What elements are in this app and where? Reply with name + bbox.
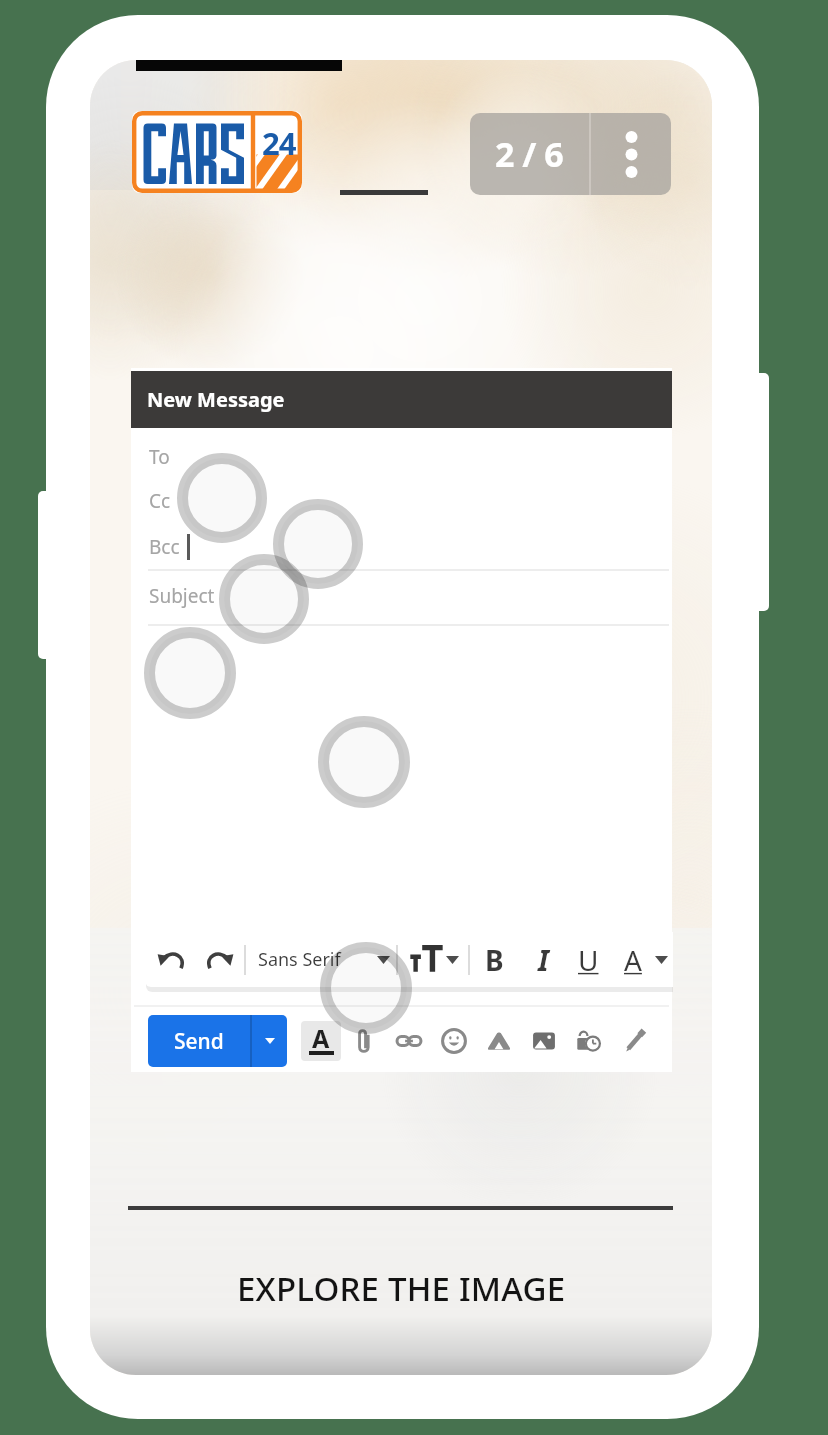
button[interactable]: Send [148, 1015, 287, 1067]
button[interactable]: Sans Serif [258, 932, 341, 987]
staticText: 24 [262, 122, 296, 164]
staticText: U [578, 941, 599, 979]
button[interactable]: Text colour [301, 1021, 341, 1061]
staticText: B [485, 941, 504, 979]
staticText: Bcc [149, 534, 180, 560]
button[interactable]: I [526, 932, 560, 987]
button[interactable]: Font size [410, 932, 443, 987]
button[interactable]: CARS24 logo [132, 111, 302, 193]
button[interactable]: Insert photo [521, 1018, 566, 1064]
button[interactable]: Confidential mode [566, 1018, 611, 1064]
staticText: Cc [149, 488, 171, 514]
button[interactable]: Insert from Drive [476, 1018, 521, 1064]
button[interactable]: Redo [201, 932, 237, 987]
button[interactable]: Undo [154, 932, 190, 987]
staticText: A [624, 941, 642, 979]
button[interactable]: Insert link [386, 1018, 431, 1064]
button[interactable]: Insert emoji [431, 1018, 476, 1064]
button[interactable]: Attach file [341, 1018, 386, 1064]
button[interactable]: Subject [131, 573, 672, 619]
staticText: I [538, 941, 549, 979]
staticText: A [312, 1021, 330, 1055]
staticText: To [149, 444, 170, 470]
button[interactable]: Expand [651, 932, 671, 987]
button[interactable]: A [616, 932, 650, 987]
staticText: New Message [147, 386, 285, 413]
staticText: EXPLORE THE IMAGE [237, 1266, 566, 1311]
button[interactable]: To [131, 434, 672, 480]
button[interactable]: 2 / 6 [470, 113, 589, 195]
staticText: 2 / 6 [495, 131, 564, 177]
button[interactable]: Cc [131, 478, 672, 524]
button[interactable]: Bcc [131, 524, 672, 570]
button[interactable]: U [571, 932, 605, 987]
staticText: Send [174, 1027, 224, 1056]
button[interactable]: Expand [373, 932, 393, 987]
staticText: Subject [149, 583, 215, 609]
button[interactable]: B [477, 932, 511, 987]
button[interactable]: Expand [442, 932, 462, 987]
button[interactable]: More options [591, 113, 671, 195]
button[interactable]: Insert signature [611, 1018, 656, 1064]
button[interactable]: New Message [131, 371, 672, 428]
staticText: Sans Serif [258, 947, 341, 972]
